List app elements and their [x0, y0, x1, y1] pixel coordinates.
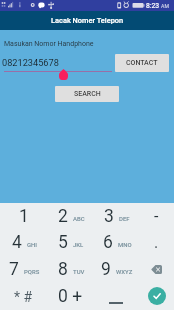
- button[interactable]: 6: [93, 229, 139, 256]
- staticText: GHI: [27, 241, 38, 248]
- button[interactable]: 3: [93, 203, 139, 229]
- staticText: CONTACT: [126, 59, 158, 67]
- staticText: 08212345678: [2, 57, 59, 68]
- button[interactable]: SEARCH: [55, 86, 119, 102]
- staticText: 8:23: [146, 2, 160, 10]
- button[interactable]: 4: [0, 229, 47, 256]
- staticText: 0 +: [58, 286, 83, 307]
- staticText: -: [154, 207, 159, 226]
- button[interactable]: CONTACT: [115, 54, 169, 72]
- staticText: DEF: [119, 215, 130, 222]
- staticText: 1: [19, 206, 29, 227]
- staticText: 6: [103, 232, 113, 253]
- staticText: PQRS: [24, 268, 40, 275]
- button[interactable]: 7: [0, 256, 47, 283]
- staticText: 7: [9, 259, 19, 280]
- staticText: .: [154, 233, 159, 252]
- staticText: JKL: [73, 241, 84, 248]
- staticText: MNO: [118, 241, 132, 248]
- staticText: TUV: [73, 268, 85, 275]
- staticText: 8: [58, 259, 68, 280]
- button[interactable]: 1: [0, 203, 47, 229]
- button[interactable]: Backspace: [151, 265, 162, 274]
- button[interactable]: Space: [93, 283, 139, 310]
- staticText: * #: [14, 289, 33, 305]
- button[interactable]: 8: [47, 256, 93, 283]
- staticText: Lacak Nomer Telepon: [51, 16, 124, 25]
- staticText: Masukan Nomor Handphone: [4, 40, 94, 48]
- staticText: 3: [104, 206, 114, 227]
- staticText: 5: [58, 232, 68, 253]
- button[interactable]: 0 +: [47, 283, 93, 310]
- staticText: 9: [101, 259, 111, 280]
- staticText: 2: [58, 206, 68, 227]
- staticText: 4: [12, 232, 22, 253]
- button[interactable]: * #: [0, 283, 47, 310]
- button[interactable]: 9: [93, 256, 139, 283]
- staticText: SEARCH: [74, 90, 101, 98]
- staticText: ABC: [73, 215, 85, 222]
- button[interactable]: Done: [139, 283, 174, 310]
- button[interactable]: .: [139, 229, 174, 256]
- button[interactable]: Done: [148, 287, 166, 305]
- staticText: AM: [161, 3, 169, 9]
- staticText: WXYZ: [116, 268, 133, 275]
- button[interactable]: -: [139, 203, 174, 229]
- button[interactable]: 5: [47, 229, 93, 256]
- button[interactable]: 2: [47, 203, 93, 229]
- button[interactable]: Backspace: [139, 256, 174, 283]
